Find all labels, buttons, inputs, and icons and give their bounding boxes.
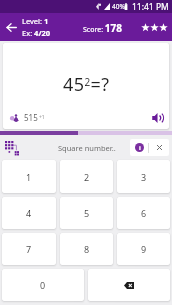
button[interactable]: Back <box>0 13 22 41</box>
staticText: +1 <box>39 114 45 121</box>
button[interactable]: Backspace <box>88 269 170 301</box>
staticText: 6 <box>141 207 147 219</box>
button[interactable]: Sound <box>150 110 166 126</box>
button[interactable]: 1 <box>2 160 56 193</box>
staticText: 452=? <box>63 72 110 97</box>
button[interactable]: 4 <box>2 197 56 229</box>
button[interactable]: Info <box>130 139 148 156</box>
staticText: i <box>139 144 141 152</box>
staticText: Score: 178 <box>83 21 122 35</box>
button[interactable]: Close <box>149 139 169 156</box>
staticText: 7 <box>26 243 32 255</box>
staticText: Level: 1 <box>22 16 49 26</box>
staticText: 11:41 PM <box>132 1 169 13</box>
staticText: 4 <box>26 207 32 219</box>
staticText: 9 <box>141 243 147 255</box>
staticText: 40% <box>112 2 125 11</box>
button[interactable]: 8 <box>60 233 113 265</box>
button[interactable]: 5 <box>60 197 113 229</box>
staticText: Square number.. <box>58 143 116 153</box>
staticText: 1 <box>26 171 32 183</box>
button[interactable]: 7 <box>2 233 56 265</box>
staticText: Ex: 4/20 <box>22 28 51 38</box>
button[interactable]: 3 <box>117 160 170 193</box>
button[interactable]: 2 <box>60 160 113 193</box>
button[interactable]: 0 <box>2 269 84 301</box>
staticText: 0 <box>40 279 46 291</box>
staticText: 5 <box>84 207 90 219</box>
staticText: 515 <box>24 112 38 123</box>
button[interactable]: 9 <box>117 233 170 265</box>
staticText: 3 <box>141 171 147 183</box>
button[interactable]: Change input mode <box>4 140 20 156</box>
staticText: 8 <box>84 243 90 255</box>
staticText: 2 <box>84 171 90 183</box>
button[interactable]: 6 <box>117 197 170 229</box>
